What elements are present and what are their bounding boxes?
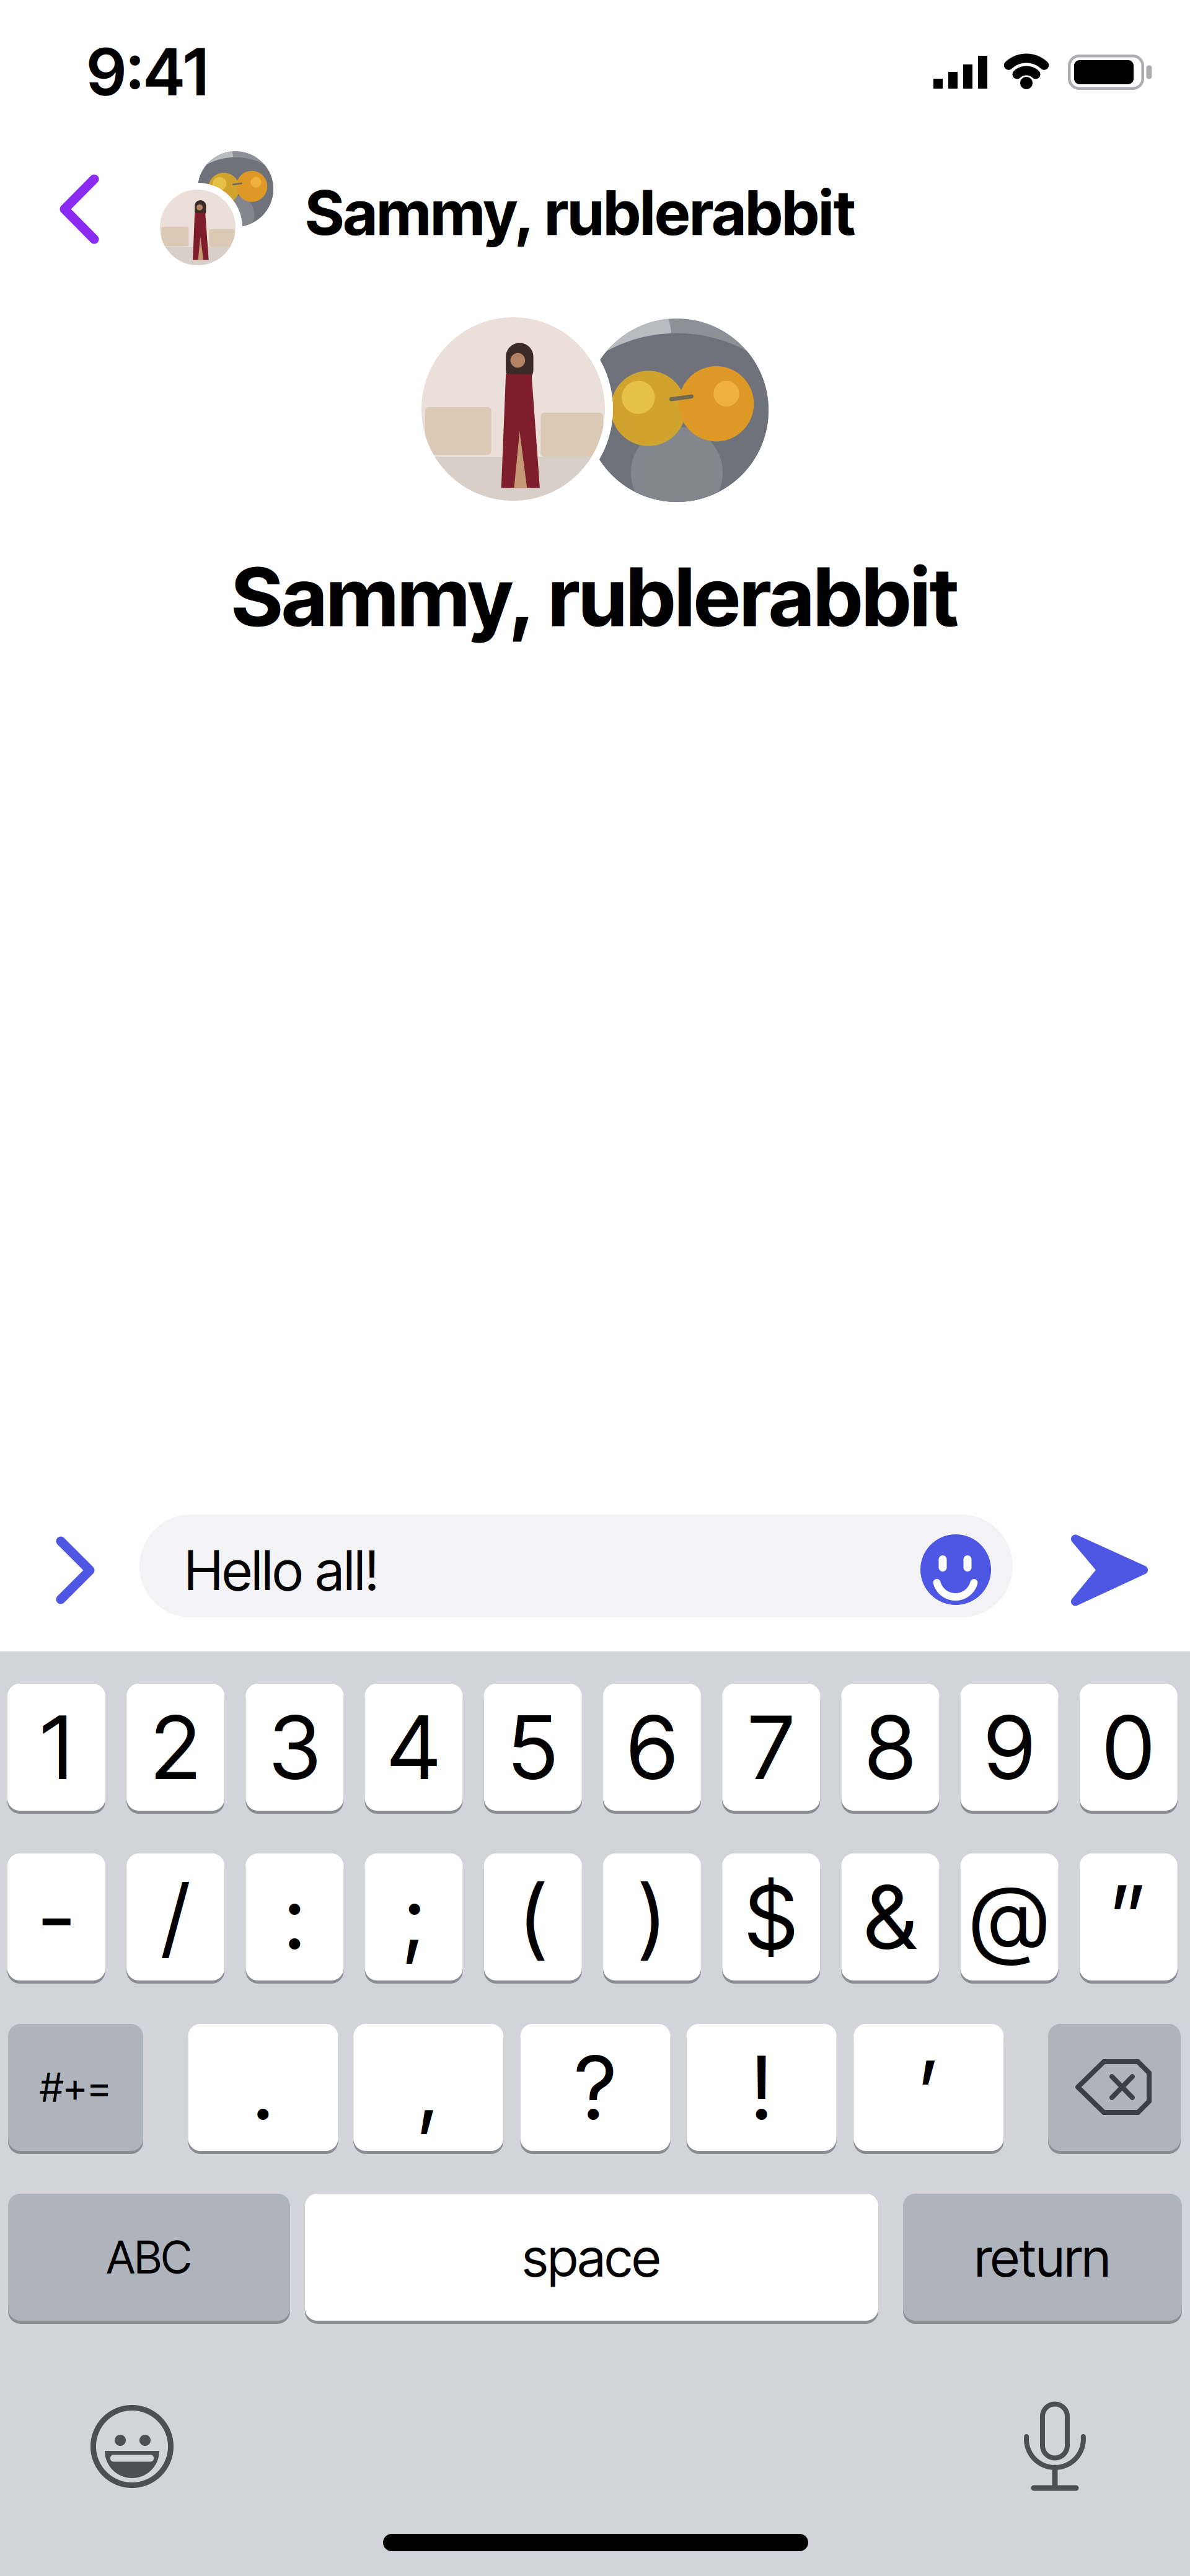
staticText: / bbox=[162, 1865, 189, 1969]
button[interactable]: , bbox=[353, 2024, 503, 2154]
staticText: Sammy, rublerabbit bbox=[306, 176, 855, 249]
staticText: 5 bbox=[508, 1696, 557, 1799]
staticText: ’ bbox=[918, 2041, 939, 2144]
button[interactable]: 2 bbox=[127, 1684, 224, 1814]
staticText: 7 bbox=[749, 1696, 794, 1799]
staticText: ABC bbox=[107, 2231, 192, 2283]
button[interactable] bbox=[1048, 2024, 1181, 2154]
button[interactable] bbox=[1069, 1534, 1150, 1607]
staticText: ) bbox=[638, 1865, 666, 1969]
button[interactable] bbox=[50, 167, 112, 251]
staticText: 4 bbox=[388, 1696, 440, 1799]
staticText: 0 bbox=[1103, 1696, 1154, 1799]
staticText: ( bbox=[519, 1865, 547, 1969]
button[interactable]: : bbox=[246, 1853, 344, 1984]
button[interactable]: ! bbox=[686, 2024, 836, 2154]
button[interactable]: Hello all! bbox=[139, 1514, 1013, 1617]
button[interactable]: - bbox=[7, 1853, 105, 1984]
staticText: ; bbox=[403, 1865, 425, 1969]
button[interactable]: 7 bbox=[722, 1684, 820, 1814]
button[interactable]: @ bbox=[960, 1853, 1058, 1984]
button[interactable] bbox=[1023, 2399, 1087, 2492]
staticText: 1 bbox=[41, 1696, 72, 1799]
staticText: . bbox=[253, 2036, 274, 2139]
staticText: Hello all! bbox=[185, 1538, 379, 1602]
button[interactable]: ) bbox=[603, 1853, 701, 1984]
button[interactable]: space bbox=[305, 2194, 878, 2324]
button[interactable]: $ bbox=[722, 1853, 820, 1984]
button[interactable]: 8 bbox=[841, 1684, 939, 1814]
staticText: 9 bbox=[985, 1696, 1034, 1799]
staticText: , bbox=[418, 2036, 439, 2139]
button[interactable]: ( bbox=[484, 1853, 582, 1984]
staticText: return bbox=[975, 2226, 1110, 2288]
staticText: 6 bbox=[627, 1696, 677, 1799]
button[interactable]: 9 bbox=[960, 1684, 1058, 1814]
staticText: 9:41 bbox=[87, 34, 208, 110]
staticText: - bbox=[38, 1865, 74, 1969]
button[interactable]: / bbox=[127, 1853, 224, 1984]
button[interactable]: ” bbox=[1080, 1853, 1177, 1984]
staticText: ” bbox=[1110, 1865, 1147, 1969]
staticText: : bbox=[284, 1865, 305, 1969]
staticText: $ bbox=[745, 1865, 797, 1969]
button[interactable]: ’ bbox=[854, 2024, 1004, 2154]
staticText: @ bbox=[970, 1865, 1048, 1969]
button[interactable]: ; bbox=[365, 1853, 463, 1984]
button[interactable]: 3 bbox=[246, 1684, 344, 1814]
staticText: 3 bbox=[269, 1696, 320, 1799]
button[interactable] bbox=[90, 2405, 174, 2488]
button[interactable]: 4 bbox=[365, 1684, 463, 1814]
button[interactable]: ABC bbox=[8, 2194, 290, 2324]
button[interactable]: return bbox=[903, 2194, 1182, 2324]
button[interactable]: 0 bbox=[1080, 1684, 1177, 1814]
button[interactable] bbox=[45, 1533, 107, 1607]
button[interactable] bbox=[160, 147, 284, 271]
button[interactable] bbox=[920, 1534, 991, 1605]
staticText: 2 bbox=[151, 1696, 200, 1799]
button[interactable]: #+= bbox=[8, 2024, 143, 2154]
staticText: ! bbox=[751, 2036, 772, 2139]
button[interactable]: 5 bbox=[484, 1684, 582, 1814]
staticText: #+= bbox=[40, 2064, 111, 2111]
staticText: space bbox=[522, 2226, 661, 2288]
staticText: ? bbox=[575, 2036, 616, 2139]
button[interactable]: ? bbox=[520, 2024, 670, 2154]
button[interactable]: . bbox=[188, 2024, 338, 2154]
button[interactable]: 1 bbox=[7, 1684, 105, 1814]
staticText: & bbox=[864, 1865, 916, 1969]
button[interactable]: & bbox=[841, 1853, 939, 1984]
staticText: 8 bbox=[865, 1696, 915, 1799]
button[interactable]: 6 bbox=[603, 1684, 701, 1814]
staticText: Sammy, rublerabbit bbox=[232, 549, 958, 645]
